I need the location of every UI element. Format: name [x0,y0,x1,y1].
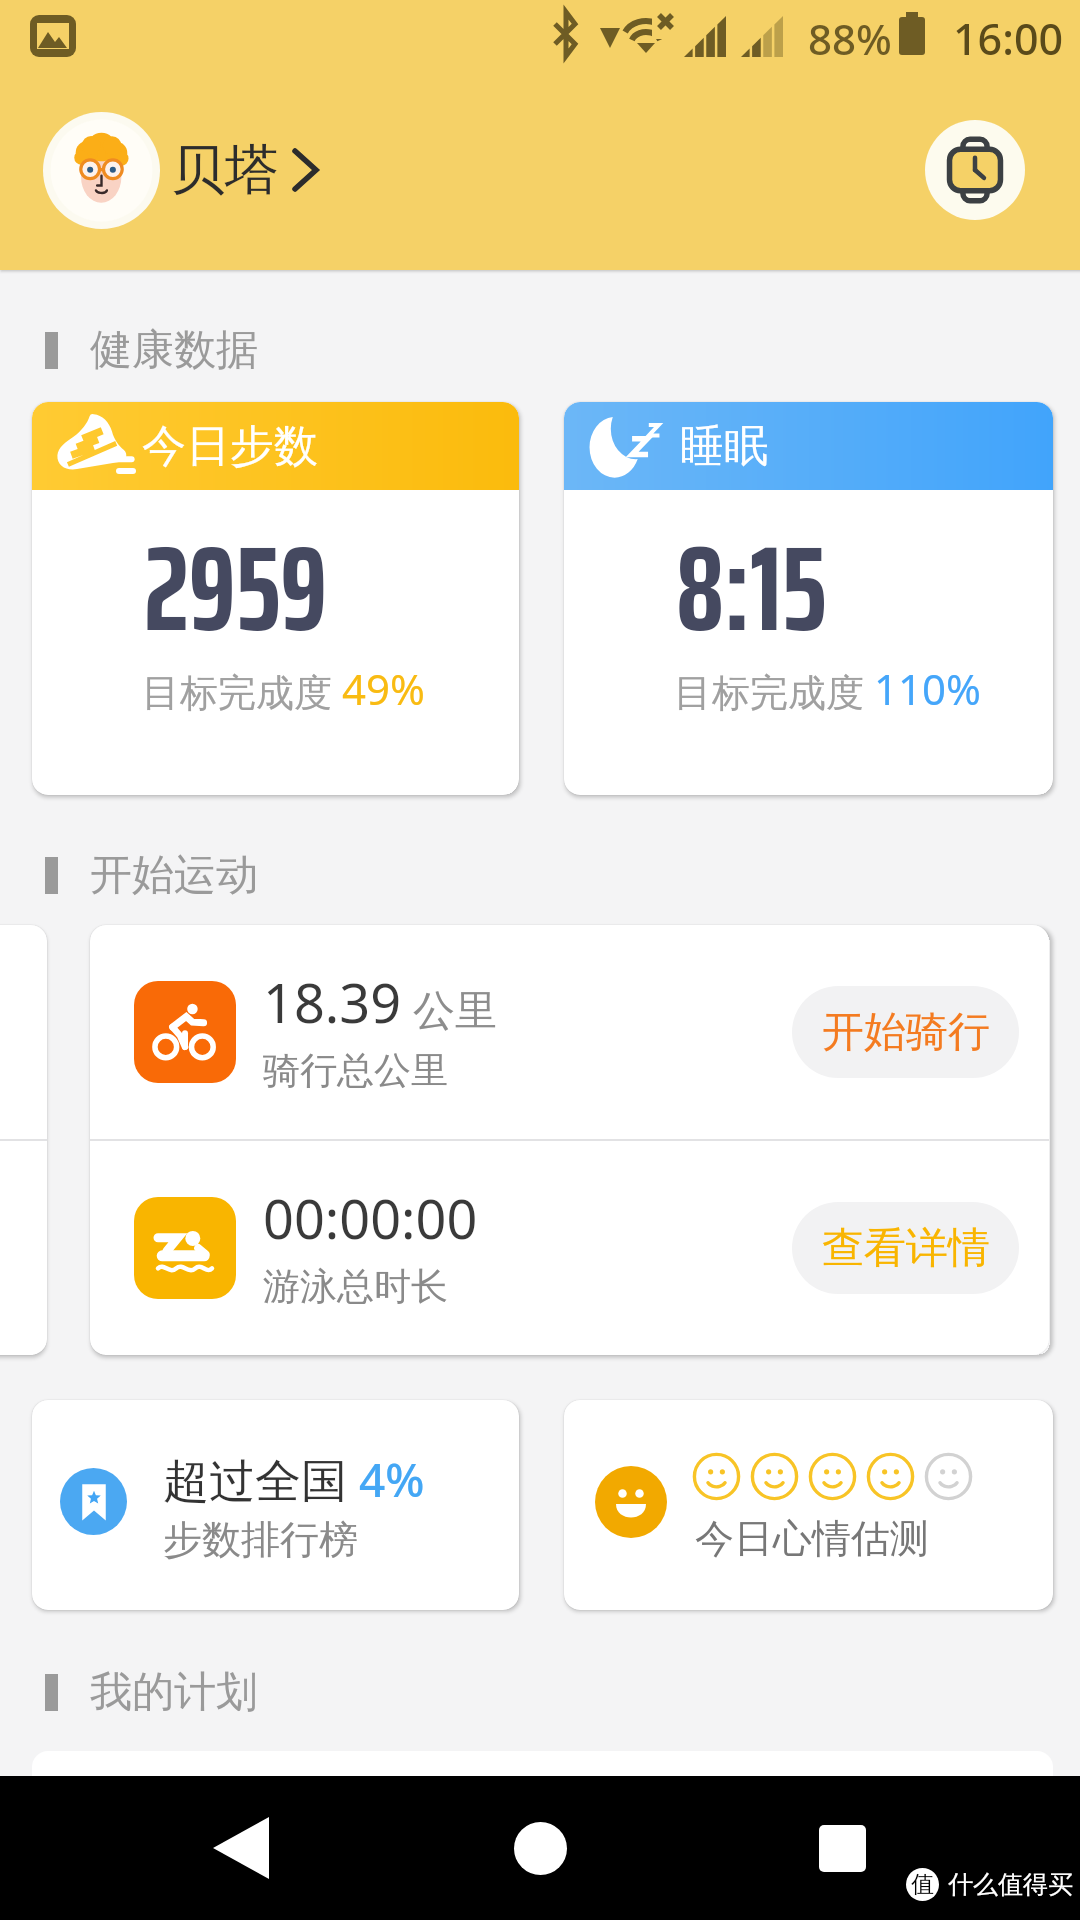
staticText: 开始骑行 [822,1006,990,1059]
button[interactable]: 贝塔 [43,111,320,229]
button[interactable]: 睡眠 [564,402,1053,795]
staticText: 超过全国 [163,1448,359,1511]
staticText: 18.39 [263,965,402,1039]
staticText: 公里 [402,980,497,1037]
staticText: 16:00 [953,9,1064,68]
staticText: 值 [911,1870,934,1899]
staticText: 什么值得买 [948,1869,1073,1900]
staticText: 今日步数 [142,419,318,474]
staticText: 游泳总时长 [263,1263,448,1310]
button[interactable]: 今日心情估测 [564,1400,1053,1610]
staticText: 步数排行榜 [163,1515,358,1564]
button[interactable]: 今日步数 [32,402,519,795]
staticText: 睡眠 [680,419,768,474]
staticText: 88% [808,10,892,67]
staticText: 49% [342,660,425,717]
button[interactable]: 超过全国 [32,1400,519,1610]
staticText: 目标完成度 [674,665,874,717]
button[interactable]: Back [186,1793,296,1903]
staticText: 00:00:00 [263,1181,478,1255]
staticText: 8:15 [676,495,827,682]
button[interactable]: Watch device [925,120,1025,220]
staticText: 今日心情估测 [695,1514,929,1563]
staticText: 查看详情 [822,1222,990,1275]
staticText: 110% [874,660,981,717]
staticText: 我的计划 [90,1666,258,1719]
staticText: 目标完成度 [142,665,342,717]
button[interactable]: 开始骑行 [792,986,1019,1078]
staticText: 健康数据 [90,324,258,377]
staticText: 骑行总公里 [263,1047,448,1094]
staticText: 贝塔 [171,136,279,204]
button[interactable]: Home [485,1793,595,1903]
staticText: 4% [359,1448,425,1511]
button[interactable]: 00:00:00 [134,1141,1019,1355]
button[interactable]: 查看详情 [792,1202,1019,1294]
button[interactable]: 18.39 [134,925,1019,1139]
staticText: 开始运动 [90,849,258,902]
button[interactable]: Recents [787,1793,897,1903]
staticText: 2959 [144,495,328,682]
